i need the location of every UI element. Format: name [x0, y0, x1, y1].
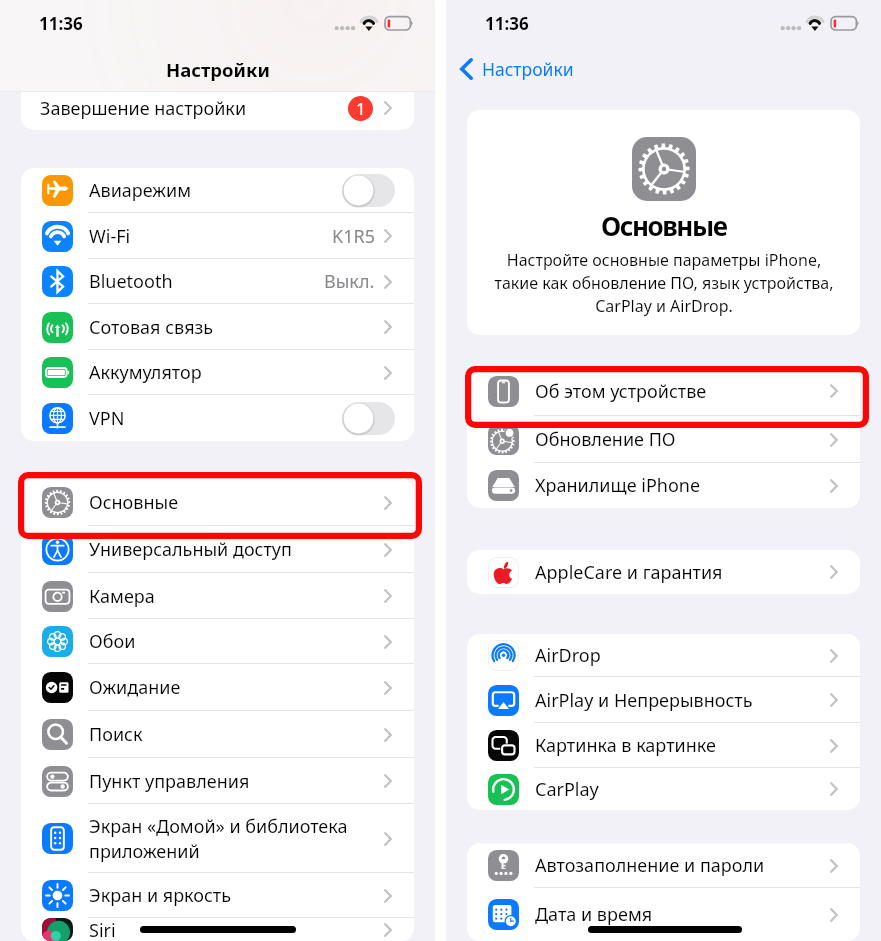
button[interactable]: AirPlay и Непрерывность — [467, 677, 860, 723]
button[interactable]: Авиарежим — [21, 168, 414, 213]
staticText: Об этом устройстве — [535, 379, 707, 404]
button[interactable]: Автозаполнение и пароли — [467, 843, 860, 888]
staticText: Универсальный доступ — [89, 537, 292, 562]
staticText: VPN — [89, 406, 125, 431]
button[interactable]: Bluetooth — [21, 259, 414, 304]
staticText: Картинка в картинке — [535, 733, 716, 758]
staticText: Обои — [89, 629, 136, 654]
staticText: Экран «Домой» и библиотека — [89, 814, 348, 839]
staticText: Bluetooth — [89, 269, 173, 294]
staticText: Настройте основные параметры iPhone, так… — [494, 249, 834, 317]
staticText: Завершение настройки — [40, 96, 247, 121]
button[interactable]: AirDrop — [467, 634, 860, 677]
staticText: 11:36 — [485, 12, 529, 35]
staticText: Siri — [89, 918, 116, 941]
button[interactable]: Обновление ПО — [467, 416, 860, 463]
staticText: Экран и яркость — [89, 883, 232, 908]
staticText: CarPlay — [535, 777, 599, 802]
staticText: AirDrop — [535, 643, 601, 668]
button[interactable]: Основные — [21, 479, 414, 526]
staticText: Настройки — [482, 57, 574, 81]
staticText: Дата и время — [535, 902, 653, 927]
button[interactable]: AppleCare и гарантия — [467, 550, 860, 594]
staticText: Хранилище iPhone — [535, 473, 701, 498]
staticText: 1 — [356, 97, 366, 120]
staticText: Камера — [89, 584, 155, 609]
staticText: Сотовая связь — [89, 315, 214, 340]
button[interactable]: Завершение настройки — [21, 92, 414, 127]
button[interactable]: Ожидание — [21, 664, 414, 711]
button[interactable]: Обои — [21, 619, 414, 664]
staticText: Настройки — [166, 57, 270, 82]
staticText: Основные — [601, 208, 727, 243]
button[interactable]: Экран и яркость — [21, 873, 414, 918]
button[interactable]: Wi-Fi — [21, 213, 414, 259]
button[interactable]: Настройки — [446, 46, 881, 92]
staticText: 11:36 — [39, 12, 83, 35]
button[interactable]: Аккумулятор — [21, 350, 414, 395]
staticText: Выкл. — [324, 269, 375, 294]
staticText: Поиск — [89, 722, 143, 747]
button[interactable]: Хранилище iPhone — [467, 463, 860, 508]
staticText: Пункт управления — [89, 769, 250, 794]
button[interactable]: Картинка в картинке — [467, 723, 860, 768]
button[interactable]: Siri — [21, 918, 414, 941]
staticText: Авиарежим — [89, 178, 191, 203]
button[interactable]: Универсальный доступ — [21, 526, 414, 573]
staticText: Ожидание — [89, 675, 181, 700]
button[interactable]: Об этом устройстве — [467, 366, 860, 416]
staticText: Аккумулятор — [89, 360, 202, 385]
staticText: AppleCare и гарантия — [535, 560, 723, 585]
button[interactable]: VPN — [21, 395, 414, 441]
staticText: приложений — [89, 839, 200, 864]
button[interactable]: Поиск — [21, 711, 414, 758]
button[interactable]: CarPlay — [467, 768, 860, 810]
staticText: Автозаполнение и пароли — [535, 853, 765, 878]
button[interactable]: Камера — [21, 573, 414, 619]
staticText: K1R5 — [332, 224, 375, 249]
staticText: AirPlay и Непрерывность — [535, 688, 753, 713]
staticText: Обновление ПО — [535, 427, 676, 452]
button[interactable]: Пункт управления — [21, 758, 414, 804]
staticText: Основные — [89, 490, 179, 515]
staticText: Wi-Fi — [89, 224, 131, 249]
button[interactable]: Дата и время — [467, 888, 860, 941]
button[interactable]: Сотовая связь — [21, 304, 414, 350]
button[interactable]: Экран «Домой» и библиотека — [21, 804, 414, 873]
